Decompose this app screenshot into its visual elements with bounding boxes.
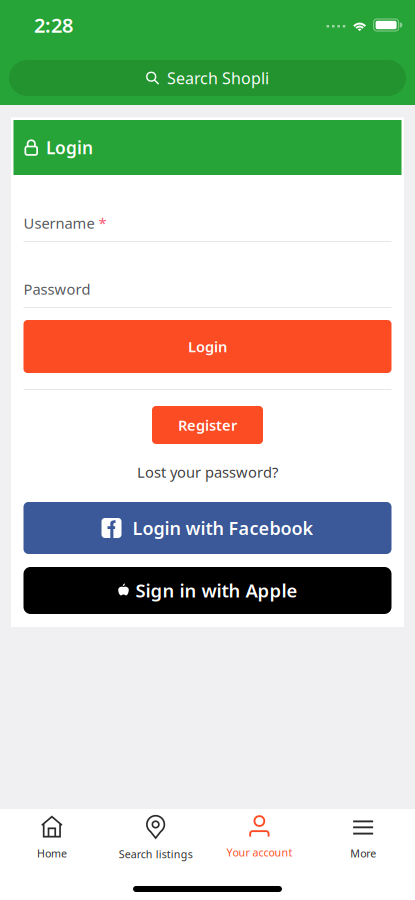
staticText: 2:28	[34, 11, 73, 39]
staticText: Sign in with Apple	[135, 578, 297, 603]
staticText: Username	[23, 213, 94, 233]
staticText: Login	[46, 136, 93, 159]
staticText: Search listings	[119, 847, 193, 861]
button[interactable]: Search Shopli	[9, 60, 406, 96]
button[interactable]: Register	[152, 406, 263, 444]
button[interactable]: Your account	[207, 809, 311, 869]
button[interactable]: Lost your password?	[137, 462, 278, 482]
button[interactable]: Login	[23, 320, 391, 373]
button[interactable]: Home	[0, 809, 104, 869]
staticText: Home	[37, 846, 67, 860]
staticText: *	[98, 213, 106, 233]
button[interactable]: More	[311, 809, 415, 869]
button[interactable]: Login with Facebook	[23, 502, 391, 554]
staticText: Password	[23, 279, 90, 299]
staticText: Login	[188, 336, 227, 356]
staticText: Register	[178, 415, 237, 435]
staticText: Login with Facebook	[132, 516, 313, 540]
staticText: More	[350, 846, 376, 860]
button[interactable]: Search listings	[104, 809, 208, 869]
staticText: Lost your password?	[137, 462, 278, 482]
button[interactable]: Sign in with Apple	[23, 567, 391, 614]
staticText: Search Shopli	[167, 67, 269, 89]
staticText: Your account	[226, 845, 292, 859]
